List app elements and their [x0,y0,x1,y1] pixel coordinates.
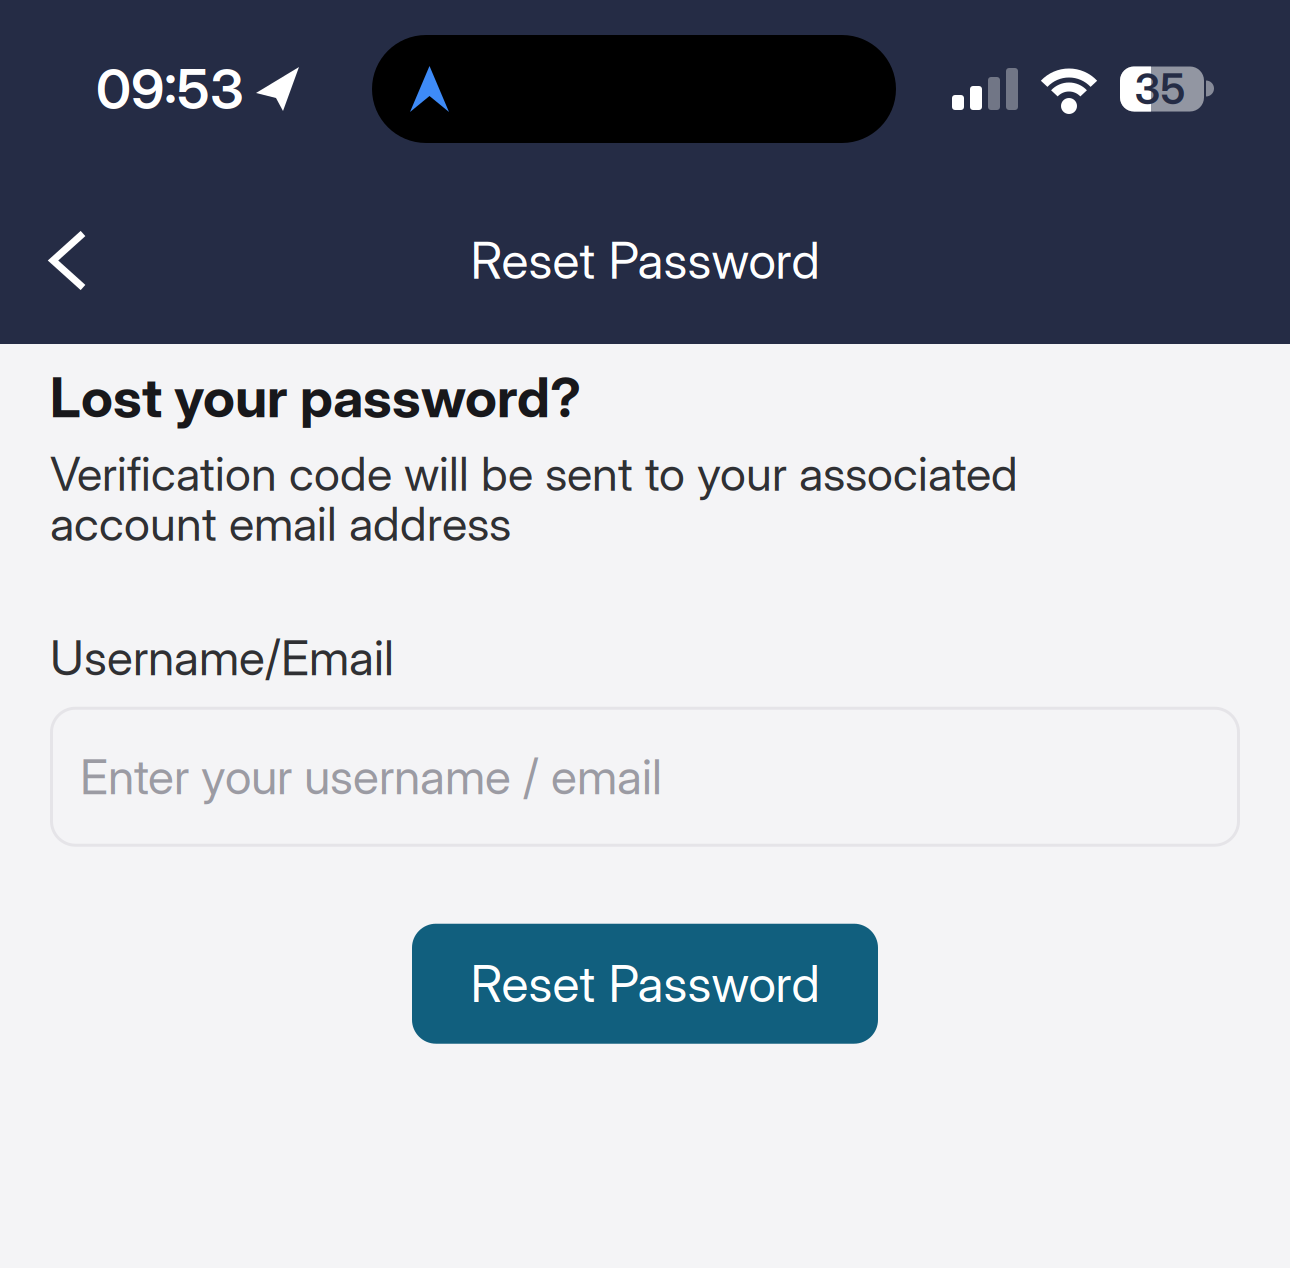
button[interactable]: Enter your username / email [50,707,1240,847]
staticText: 09:53 [96,56,244,122]
button[interactable]: Reset Password [412,924,878,1044]
staticText: Verification code will be sent to your a… [50,448,1018,549]
staticText: Reset Password [470,953,819,1014]
staticText: Username/Email [50,629,394,687]
staticText: Lost your password? [50,364,581,430]
staticText: Enter your username / email [80,748,662,806]
staticText: Reset Password [470,230,819,291]
button[interactable]: Back [0,230,116,290]
staticText: 35 [1134,64,1185,114]
